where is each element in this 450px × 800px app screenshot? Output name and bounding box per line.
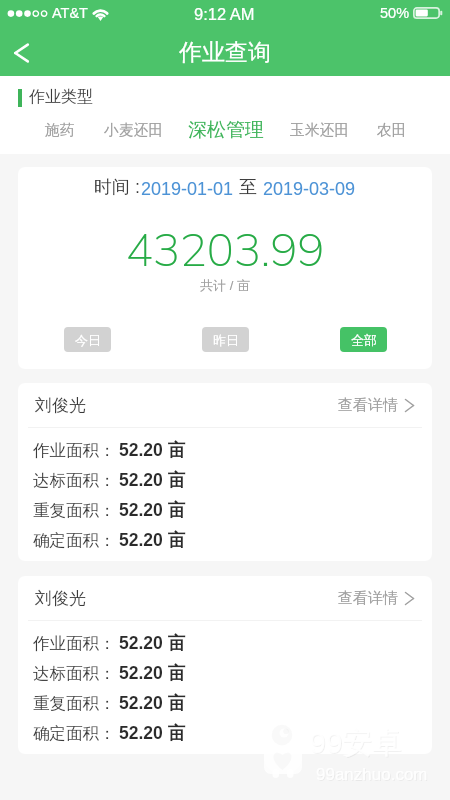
staticText: 99anzhuo.com [317, 766, 429, 785]
staticText: 52.20 亩 [119, 529, 186, 551]
staticText: 52.20 亩 [119, 632, 186, 654]
staticText: 查看详情 [338, 589, 398, 608]
staticText: 刘俊光 [35, 588, 86, 609]
staticText: 52.20 亩 [119, 662, 186, 684]
button[interactable]: 刘俊光 [18, 576, 432, 754]
staticText: 52.20 亩 [119, 469, 186, 491]
staticText: 达标面积： [33, 470, 116, 491]
staticText: 作业类型 [29, 87, 93, 107]
staticText: AT&T [52, 5, 88, 21]
staticText: 作业面积： [33, 440, 116, 461]
button[interactable]: 深松管理 [184, 108, 268, 154]
button[interactable]: 今日 [64, 327, 111, 352]
staticText: 确定面积： [33, 723, 116, 744]
staticText: 50% [380, 5, 410, 21]
staticText: 玉米还田 [290, 121, 350, 140]
button[interactable]: 施药 [18, 108, 102, 154]
staticText: 作业面积： [33, 633, 116, 654]
staticText: 99安卓 [310, 725, 404, 763]
button[interactable]: 刘俊光 [18, 383, 432, 561]
staticText: 查看详情 [338, 396, 398, 415]
staticText: 52.20 亩 [119, 499, 186, 521]
staticText: 小麦还田 [104, 121, 164, 140]
staticText: 2019-01-01 [141, 179, 234, 199]
staticText: 确定面积： [33, 530, 116, 551]
staticText: 共计 / 亩 [18, 277, 432, 293]
staticText: 全部 [351, 332, 377, 348]
staticText: 99anzhuo.com [316, 765, 428, 784]
staticText: 52.20 亩 [119, 439, 186, 461]
staticText: 52.20 亩 [119, 722, 186, 744]
staticText: 达标面积： [33, 663, 116, 684]
staticText: 时间 : [94, 176, 141, 199]
staticText: 施药 [45, 121, 75, 140]
staticText: 深松管理 [188, 118, 264, 142]
staticText: 至 [234, 176, 263, 199]
button[interactable]: 昨日 [202, 327, 249, 352]
button[interactable]: 小麦还田 [92, 108, 176, 154]
button[interactable]: 全部 [340, 327, 387, 352]
staticText: 2019-03-09 [263, 179, 356, 199]
staticText: 刘俊光 [35, 395, 86, 416]
staticText: 昨日 [213, 332, 239, 348]
staticText: 重复面积： [33, 500, 116, 521]
staticText: 重复面积： [33, 693, 116, 714]
button[interactable]: 玉米还田 [278, 108, 362, 154]
staticText: 52.20 亩 [119, 692, 186, 714]
staticText: 99安卓 [309, 724, 403, 762]
staticText: 今日 [75, 332, 101, 348]
staticText: 9:12 AM [194, 5, 255, 23]
staticText: 作业查询 [179, 38, 271, 67]
staticText: 43203.99 [18, 221, 432, 277]
staticText: 农田 [377, 121, 407, 140]
button[interactable]: 农田 [350, 108, 434, 154]
button[interactable]: Back [0, 30, 46, 76]
